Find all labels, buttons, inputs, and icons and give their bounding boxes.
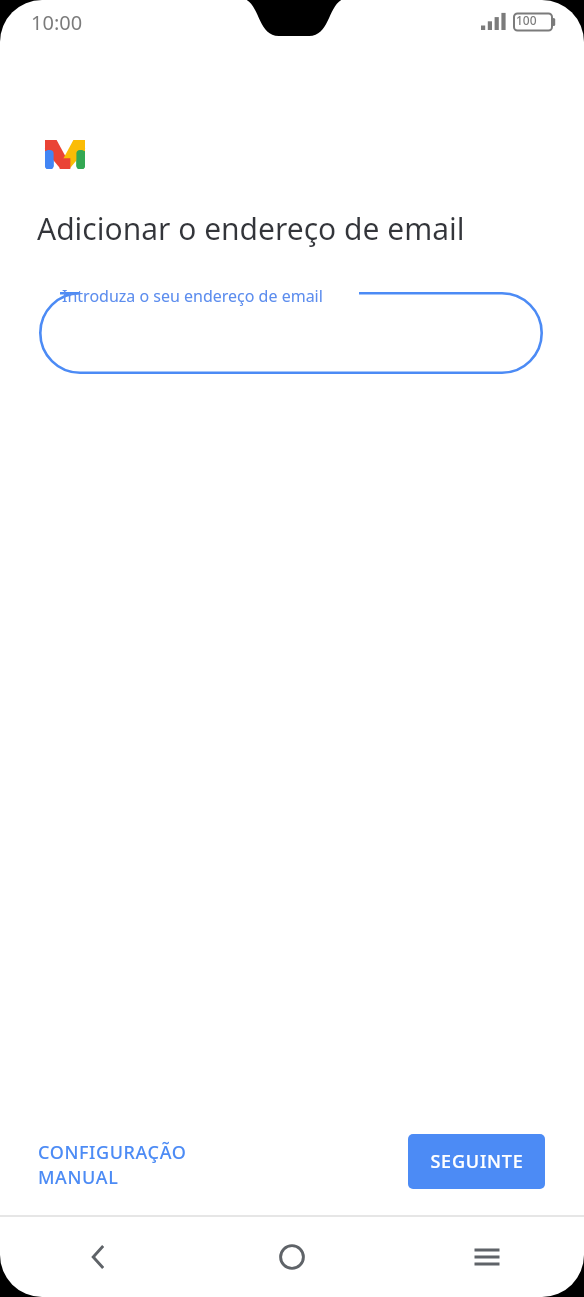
button[interactable]: CONFIGURAÇÃO MANUAL xyxy=(20,1140,270,1184)
button[interactable]: Back xyxy=(0,1217,195,1297)
staticText: Adicionar o endereço de email xyxy=(37,208,465,249)
staticText: SEGUINTE xyxy=(430,1149,524,1174)
button[interactable]: SEGUINTE xyxy=(408,1134,545,1189)
staticText: 100 xyxy=(516,12,537,28)
staticText: Introduza o seu endereço de email xyxy=(62,285,323,307)
staticText: CONFIGURAÇÃO MANUAL xyxy=(38,1140,270,1184)
button[interactable]: Home xyxy=(195,1217,389,1297)
staticText: 10:00 xyxy=(31,9,83,36)
button[interactable]: Recent apps xyxy=(389,1217,584,1297)
button[interactable] xyxy=(39,292,543,374)
